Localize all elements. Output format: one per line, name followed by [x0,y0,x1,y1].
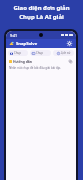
staticText: SnapSolve [16,41,38,47]
staticText: Chụp màn [36,51,49,55]
staticText: Giao diện đơn giản [13,4,70,12]
staticText: Hướng dẫn [13,59,33,64]
staticText: Chụp ảnh [14,51,26,55]
staticText: Lịch sử [61,51,71,55]
staticText: Chụp Là AI giải [19,13,64,21]
staticText: Nhấn nút chụp để bắt đầu giải bài tập. [9,66,62,70]
staticText: 9:41 [10,33,17,38]
button[interactable]: Chụp màn [30,50,51,56]
button[interactable]: Chụp ảnh [8,50,28,56]
button[interactable]: Hướng dẫn [9,59,73,64]
button[interactable]: Copy [68,59,73,64]
button[interactable]: Settings [66,40,73,47]
button[interactable]: Lịch sử [53,50,74,56]
